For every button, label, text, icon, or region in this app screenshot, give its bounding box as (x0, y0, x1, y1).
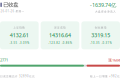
staticText: 创业板指 (95, 26, 107, 29)
staticText: 日成交额总计 32890亿元 (0, 74, 35, 78)
staticText: 14316.64 (49, 32, 71, 39)
staticText: 大盘资金净流入 (95, 10, 116, 13)
button[interactable]: 深证成指 (41, 21, 79, 49)
staticText: -123.82 (48, 41, 60, 45)
staticText: -10.35 (90, 41, 100, 45)
staticText: 较上一日增量 +982亿 (90, 74, 120, 78)
staticText: 3319.15 (91, 32, 110, 39)
staticText: -0.31% (101, 41, 111, 45)
staticText: 上证指数 (13, 26, 25, 29)
staticText: -1639.74亿 (90, 1, 116, 9)
button[interactable]: 上证指数 (0, 21, 39, 49)
staticText: 涨1604 (108, 57, 120, 63)
staticText: 26-01-26 星期一 (0, 10, 24, 13)
staticText: 已收盘 (3, 1, 18, 8)
button[interactable]: 创业板指 (81, 21, 120, 49)
staticText: -0.86% (62, 41, 72, 45)
staticText: 4132.61 (10, 32, 29, 39)
staticText: -3.09% (19, 41, 29, 45)
staticText: 2771 (0, 57, 8, 63)
staticText: 深证成指 (54, 26, 66, 29)
staticText: -3.55 (10, 41, 18, 45)
